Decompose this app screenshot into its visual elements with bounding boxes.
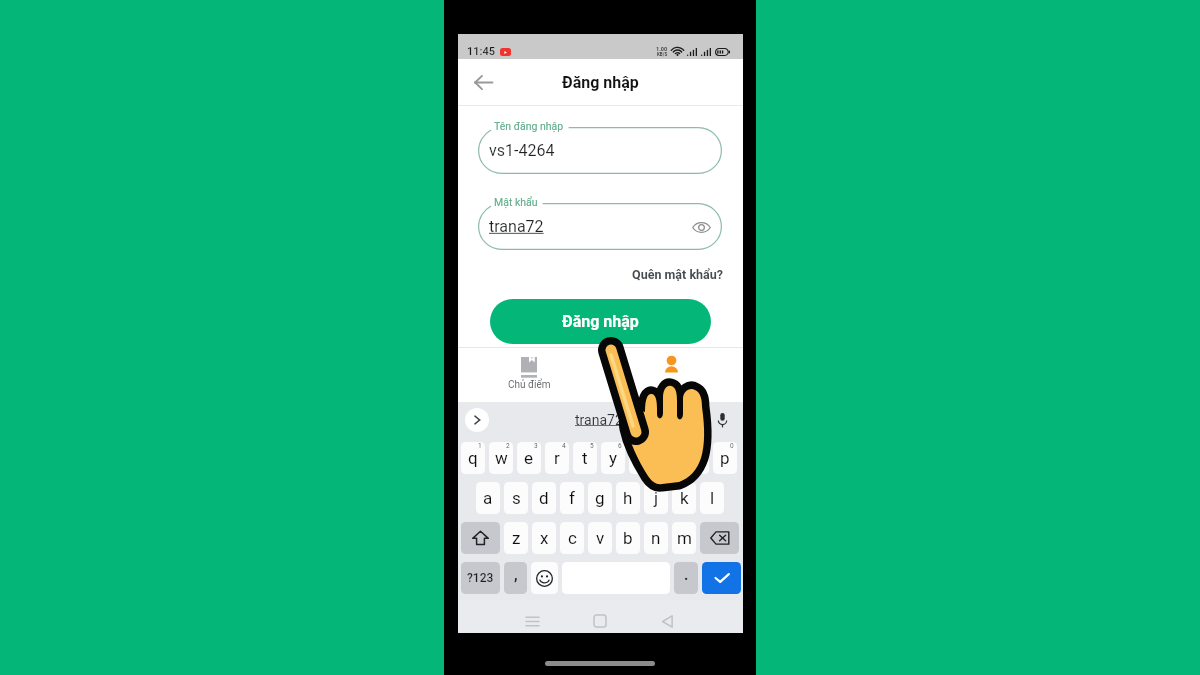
staticText: Đăng nhập [562,73,639,92]
button[interactable]: n [644,522,668,554]
staticText: x [540,528,549,548]
staticText: KB/S [657,52,668,57]
staticText: r [554,448,560,468]
staticText: a [483,488,493,508]
button[interactable]: . [674,562,698,594]
button[interactable]: j [644,482,668,514]
button[interactable]: v [588,522,612,554]
button[interactable]: s [504,482,528,514]
button[interactable]: u [629,442,653,474]
staticText: Tên đăng nhập [494,120,564,132]
button[interactable]: b [616,522,640,554]
staticText: y [609,448,618,468]
button[interactable]: Done [702,562,741,594]
staticText: 1.00 [656,46,668,52]
button[interactable]: Recents [516,605,548,637]
staticText: Quên mật khẩu? [632,267,723,282]
staticText: c [568,528,577,548]
button[interactable]: Back [468,67,498,97]
button[interactable]: d [532,482,556,514]
staticText: h [623,488,633,508]
button[interactable]: g [588,482,612,514]
button[interactable]: , [504,562,527,594]
staticText: Mật khẩu [494,196,538,208]
staticText: 4 [562,442,566,450]
staticText: 0 [730,442,734,450]
staticText: n [651,528,661,548]
button[interactable]: Voice input [711,409,733,431]
button[interactable]: f [560,482,584,514]
staticText: g [595,488,605,508]
staticText: 11:45 [467,45,495,58]
button[interactable]: o [685,442,709,474]
staticText: v [596,528,605,548]
button[interactable]: h [616,482,640,514]
staticText: l [710,488,715,508]
staticText: 2 [506,442,510,450]
button[interactable]: Đăng nhập [490,299,711,344]
button[interactable]: a [476,482,500,514]
staticText: q [468,448,478,468]
button[interactable]: z [504,522,528,554]
button[interactable]: w [489,442,513,474]
button[interactable]: Profile [648,350,694,400]
staticText: p [720,448,730,468]
staticText: k [680,488,689,508]
button[interactable]: l [700,482,724,514]
staticText: e [524,448,534,468]
staticText: 3 [534,442,538,450]
button[interactable]: Show password [689,215,713,239]
staticText: o [692,448,702,468]
staticText: , [514,566,518,584]
staticText: 5 [590,442,594,450]
button[interactable]: x [532,522,556,554]
button[interactable]: c [560,522,584,554]
staticText: 1 [478,442,482,450]
button[interactable]: t [573,442,597,474]
staticText: z [512,528,521,548]
button[interactable]: ?123 [461,562,500,594]
staticText: f [569,488,575,508]
staticText: Chủ điểm [508,379,551,391]
staticText: 9 [702,442,706,450]
staticText: u [636,448,646,468]
staticText: ?123 [467,571,494,585]
staticText: s [512,488,521,508]
button[interactable]: k [672,482,696,514]
button[interactable]: Back [651,605,683,637]
button[interactable]: p [713,442,737,474]
button[interactable]: m [672,522,696,554]
button[interactable]: e [517,442,541,474]
button[interactable]: Backspace [700,522,739,554]
staticText: 6 [618,442,622,450]
button[interactable]: Chủ điểm [506,350,552,400]
button[interactable]: Quên mật khẩu? [608,262,723,286]
button[interactable]: r [545,442,569,474]
staticText: t [582,448,588,468]
staticText: m [677,528,692,548]
staticText: Đăng nhập [562,312,639,331]
button[interactable]: Emoji [531,562,558,594]
button[interactable]: Shift [461,522,500,554]
staticText: j [654,488,659,508]
button[interactable]: q [461,442,485,474]
button[interactable]: trana72 [575,412,623,428]
staticText: vs1-4264 [489,141,555,160]
button[interactable]: y [601,442,625,474]
button[interactable]: Home [584,605,616,637]
staticText: . [684,566,689,584]
staticText: w [495,448,508,468]
staticText: b [623,528,633,548]
button[interactable]: More suggestions [465,408,489,432]
staticText: trana72 [489,217,544,236]
staticText: d [539,488,549,508]
